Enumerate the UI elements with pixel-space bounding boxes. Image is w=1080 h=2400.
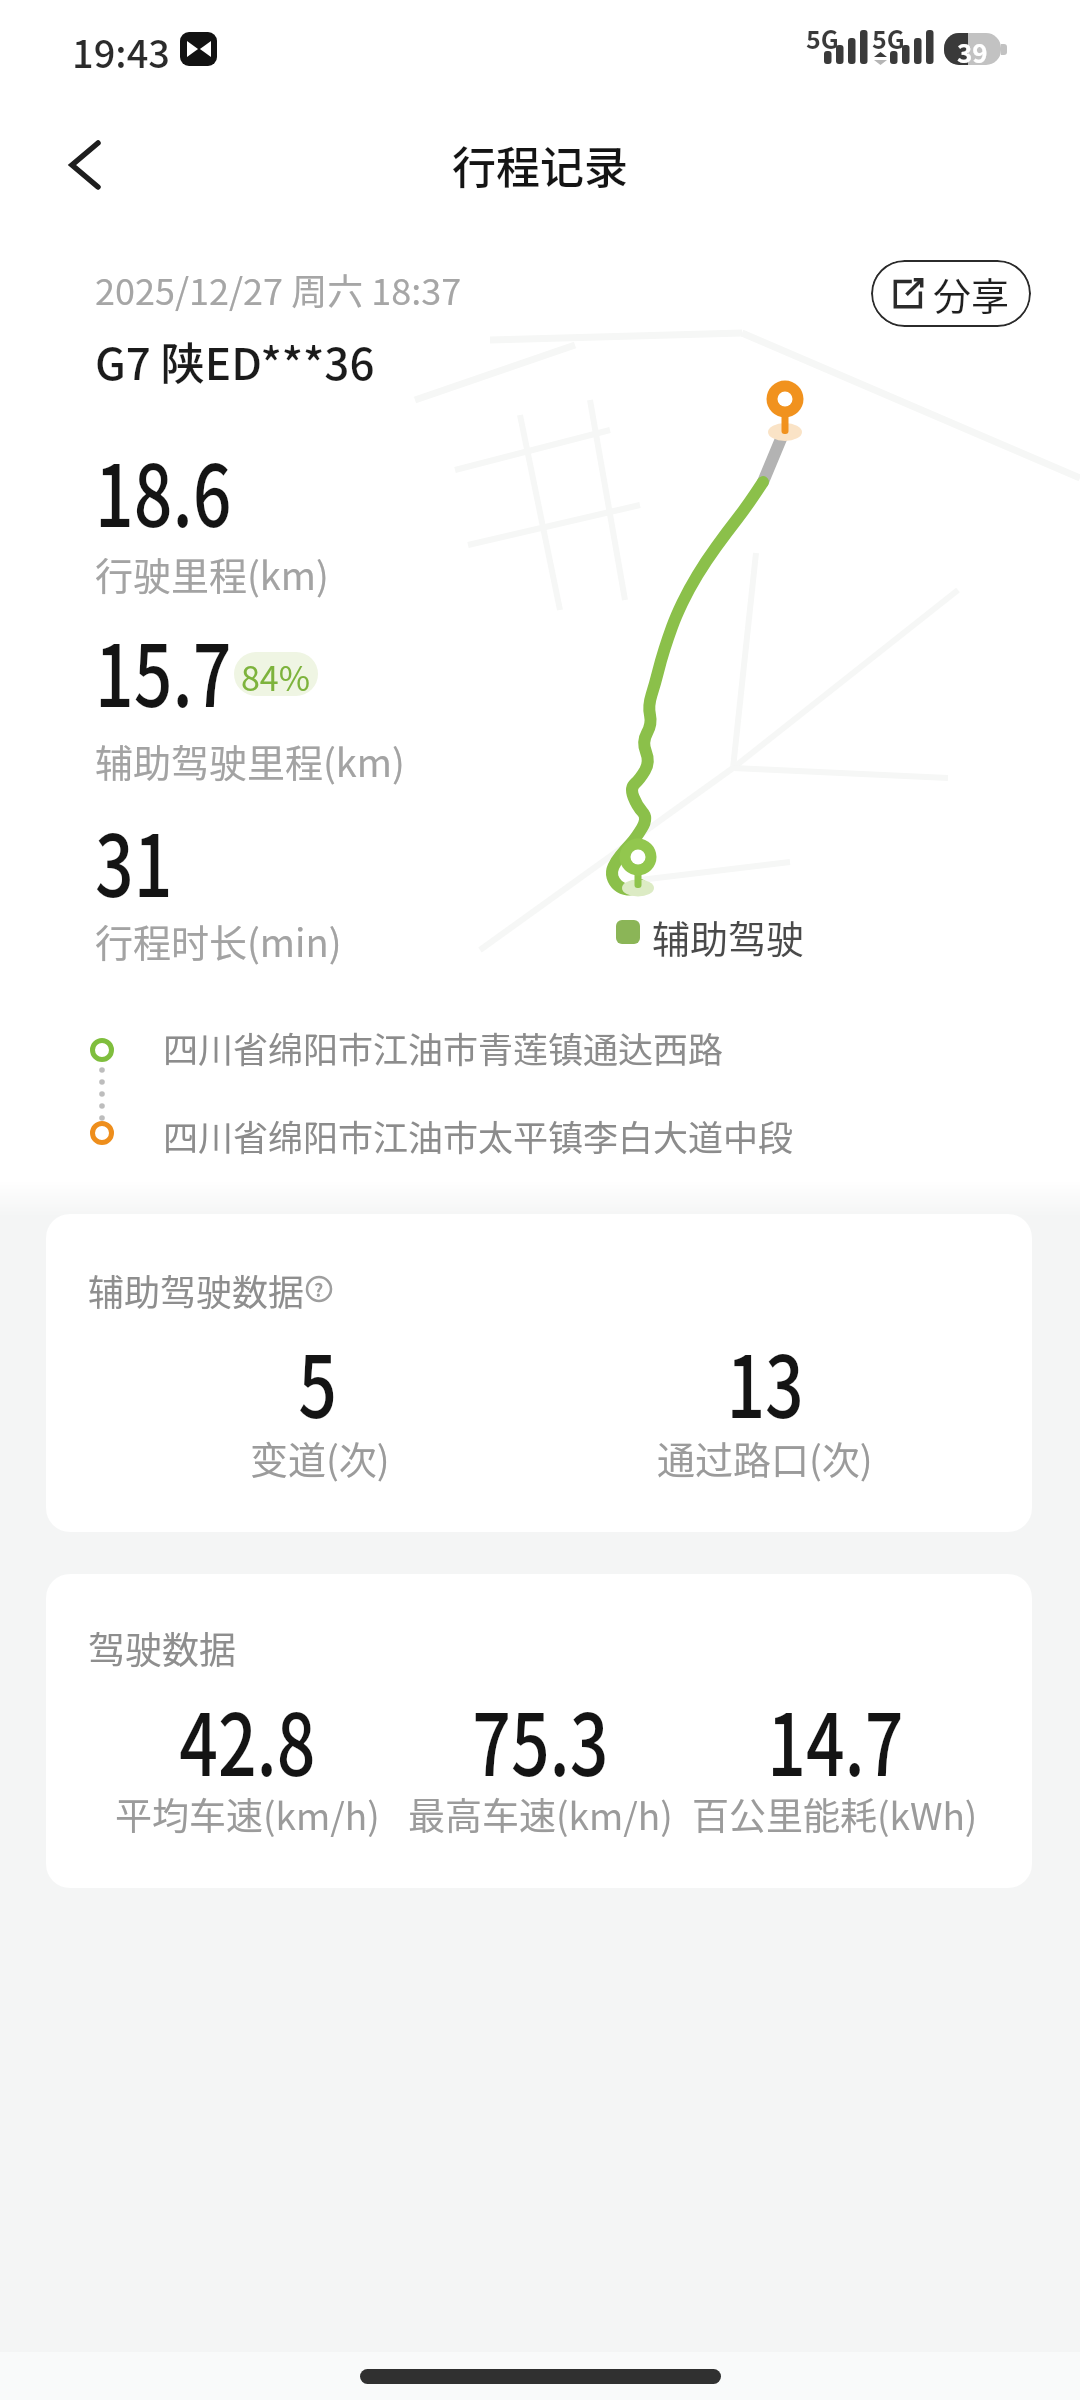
staticText: 最高车速(km/h) <box>408 1787 673 1841</box>
staticText: 驾驶数据 <box>88 1621 236 1675</box>
staticText: 行程记录 <box>452 133 628 197</box>
button[interactable]: ? <box>305 1275 333 1303</box>
staticText: 5G <box>872 20 905 56</box>
staticText: 18.6 <box>95 427 232 552</box>
staticText: 13 <box>726 1318 805 1443</box>
staticText: 84% <box>241 652 311 696</box>
button[interactable] <box>50 130 120 200</box>
staticText: G7 陕ED***36 <box>95 329 375 393</box>
staticText: 行驶里程(km) <box>95 546 329 601</box>
staticText: 变道(次) <box>250 1430 390 1485</box>
staticText: 2025/12/27 周六 18:37 <box>95 263 462 315</box>
staticText: 平均车速(km/h) <box>115 1787 380 1841</box>
staticText: 四川省绵阳市江油市太平镇李白大道中段 <box>163 1110 794 1161</box>
staticText: 通过路口(次) <box>657 1430 873 1485</box>
staticText: 42.8 <box>179 1676 316 1801</box>
staticText: ? <box>314 1276 324 1302</box>
staticText: 辅助驾驶数据 <box>88 1264 305 1316</box>
staticText: 5 <box>298 1318 338 1443</box>
staticText: 辅助驾驶里程(km) <box>95 733 405 788</box>
staticText: 19:43 <box>72 24 170 79</box>
staticText: 75.3 <box>472 1676 609 1801</box>
staticText: 行程时长(min) <box>95 913 342 968</box>
staticText: 分享 <box>933 266 1010 321</box>
staticText: 39 <box>957 33 988 65</box>
staticText: 31 <box>95 797 173 922</box>
staticText: 15.7 <box>95 607 232 732</box>
staticText: 辅助驾驶 <box>652 909 805 964</box>
staticText: 14.7 <box>767 1676 904 1801</box>
staticText: 百公里能耗(kWh) <box>692 1787 978 1841</box>
button[interactable]: 分享 <box>871 260 1031 327</box>
staticText: 5G <box>806 20 839 56</box>
staticText: 四川省绵阳市江油市青莲镇通达西路 <box>163 1022 724 1073</box>
